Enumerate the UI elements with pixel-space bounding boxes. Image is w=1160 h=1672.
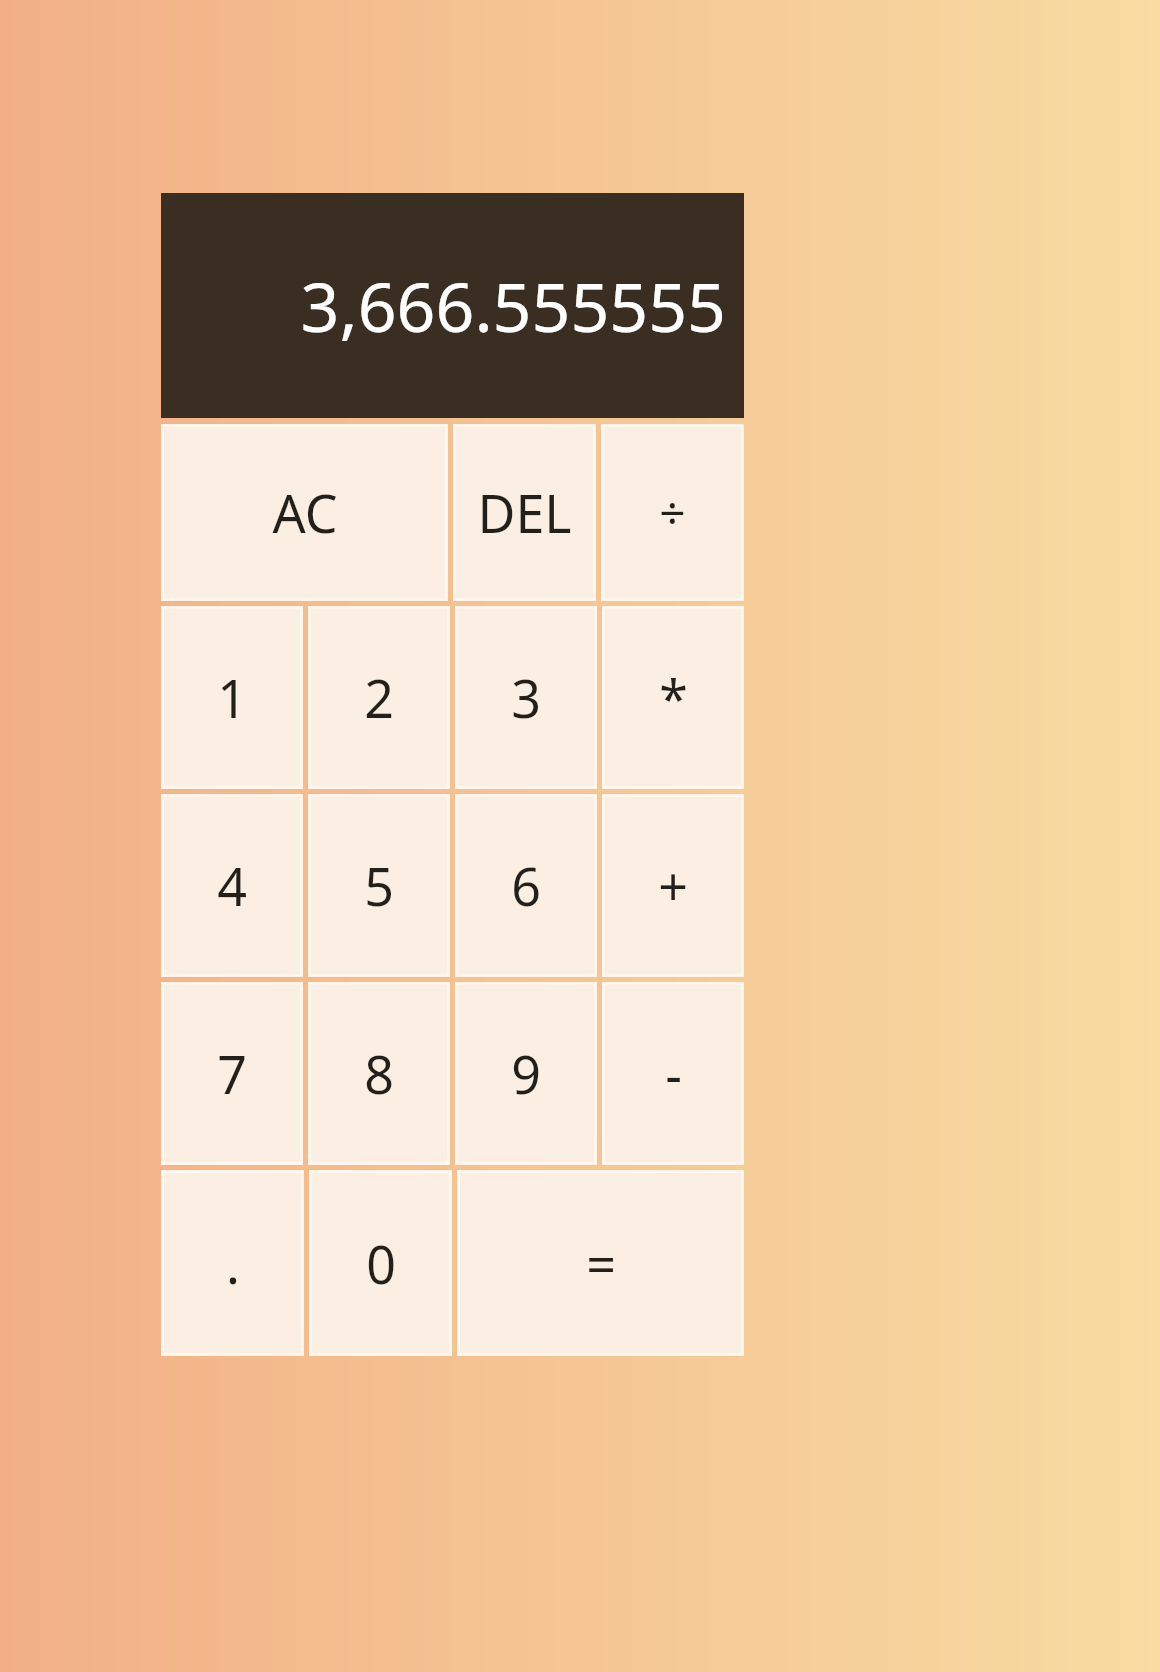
button[interactable]: . [161,1170,304,1356]
staticText: 1 [217,662,247,733]
button[interactable]: - [602,982,744,1165]
staticText: 2 [364,662,394,733]
button[interactable]: 4 [161,794,303,977]
button[interactable]: 9 [455,982,597,1165]
button[interactable]: AC [161,424,448,601]
button[interactable]: 1 [161,606,303,789]
button[interactable]: 0 [309,1170,452,1356]
button[interactable]: + [602,794,744,977]
button[interactable]: 8 [308,982,450,1165]
staticText: 9 [511,1038,541,1109]
button[interactable]: * [602,606,744,789]
button[interactable]: 7 [161,982,303,1165]
staticText: 7 [217,1038,247,1109]
button[interactable]: = [457,1170,744,1356]
button[interactable]: 3 [455,606,597,789]
button[interactable]: 6 [455,794,597,977]
staticText: 8 [364,1038,394,1109]
staticText: DEL [477,477,572,548]
staticText: 6 [511,850,541,921]
button[interactable]: 2 [308,606,450,789]
staticText: * [659,662,688,733]
staticText: 4 [217,850,247,921]
staticText: + [658,850,688,921]
staticText: ÷ [659,481,686,544]
staticText: 3 [511,662,541,733]
button[interactable]: DEL [453,424,596,601]
staticText: = [586,1228,616,1299]
staticText: . [226,1228,240,1299]
staticText: 0 [366,1228,396,1299]
staticText: 5 [364,850,394,921]
button[interactable]: ÷ [601,424,744,601]
staticText: - [665,1038,682,1109]
staticText: AC [272,477,338,548]
staticText: 3,666.555555 [300,259,726,352]
button[interactable]: 5 [308,794,450,977]
